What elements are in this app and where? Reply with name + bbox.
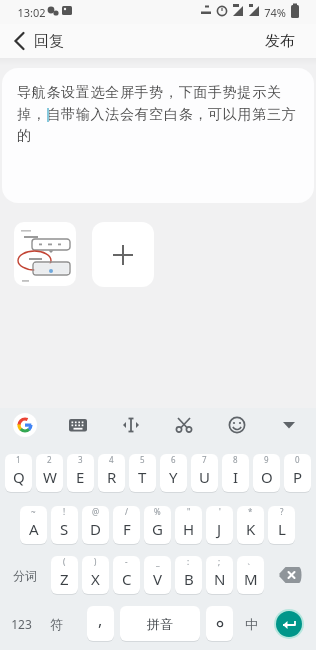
button[interactable]: 中 [237,606,265,642]
button[interactable]: 4 [98,454,125,492]
button[interactable]: 发布 [258,31,302,51]
staticText: Z [60,569,69,589]
button[interactable]: 1 [5,454,32,492]
button[interactable]: , [87,606,114,641]
staticText: I [233,467,239,487]
staticText: 8 [233,454,238,465]
button[interactable] [92,222,154,287]
staticText: " [187,506,191,517]
staticText: T [138,467,147,487]
button[interactable] [206,606,233,641]
staticText: ; [218,556,221,567]
staticText: , [98,609,103,631]
staticText: M [244,569,258,589]
button[interactable]: 2 [36,454,63,492]
staticText: G [152,519,163,539]
button[interactable]: _ [144,556,171,594]
staticText: 、 [247,556,255,566]
staticText: U [199,467,210,487]
staticText: ? [280,506,284,517]
staticText: L [278,519,286,539]
staticText: 123 [11,616,32,632]
staticText: Y [169,467,178,487]
staticText: ( [63,556,66,567]
button[interactable]: : [175,556,202,594]
button[interactable] [281,417,297,433]
button[interactable]: @ [82,506,109,544]
button[interactable]: ) [82,556,109,594]
staticText: A [29,519,39,539]
staticText: Q [13,467,25,487]
staticText: E [76,467,85,487]
staticText: % [154,506,161,517]
staticText: : [187,556,190,567]
button[interactable]: " [175,506,202,544]
staticText: 回复 [34,32,64,51]
staticText: X [91,569,100,589]
button[interactable]: / [113,506,140,544]
staticText: 0 [295,454,300,465]
button[interactable]: 123 [5,606,37,642]
button[interactable] [274,609,304,639]
button[interactable]: 8 [222,454,249,492]
button[interactable]: % [144,506,171,544]
staticText: C [122,569,132,589]
staticText: 拼音 [147,616,173,632]
button[interactable]: ? [268,506,295,544]
button[interactable]: 导航条设置选全屏手势，下面手势提示关掉，自带输入法会有空白条，可以用第三方的 [2,68,314,203]
button[interactable]: * [237,506,264,544]
staticText: H [183,519,195,539]
button[interactable]: 9 [253,454,280,492]
staticText: 导航条设置选全屏手势，下面手势提示关掉，自带输入法会有空白条，可以用第三方的 [17,84,301,144]
button[interactable] [121,415,141,435]
staticText: V [153,569,163,589]
staticText: O [261,467,273,487]
button[interactable]: ' [206,506,233,544]
button[interactable]: ! [51,506,78,544]
button[interactable]: ; [206,556,233,594]
button[interactable] [174,415,194,435]
button[interactable]: 符 [42,606,70,642]
button[interactable]: 5 [129,454,156,492]
staticText: ~ [31,506,36,517]
staticText: _ [156,556,160,567]
staticText: 分词 [13,568,37,583]
staticText: - [125,556,128,567]
button[interactable]: 拼音 [120,606,200,641]
button[interactable] [10,31,30,51]
staticText: 7 [202,454,207,465]
button[interactable] [14,222,76,286]
staticText: * [248,506,253,517]
staticText: B [184,569,194,589]
button[interactable]: ( [51,556,78,594]
button[interactable] [227,415,247,435]
staticText: 6 [171,454,176,465]
staticText: K [246,519,256,539]
staticText: 2 [47,454,52,465]
button[interactable] [277,565,305,585]
staticText: N [214,569,226,589]
staticText: / [125,506,128,517]
button[interactable]: 3 [67,454,94,492]
staticText: 符 [50,616,63,632]
staticText: F [123,519,131,539]
staticText: 发布 [265,32,295,51]
staticText: D [90,519,101,539]
button[interactable]: 6 [160,454,187,492]
staticText: J [217,519,222,539]
button[interactable]: 7 [191,454,218,492]
staticText: ) [94,556,97,567]
staticText: 5 [140,454,145,465]
button[interactable]: ~ [20,506,47,544]
button[interactable] [13,413,37,437]
staticText: S [60,519,69,539]
staticText: 1 [16,454,21,465]
button[interactable]: 、 [237,556,264,594]
button[interactable]: - [113,556,140,594]
staticText: P [293,467,303,487]
staticText: ! [63,506,66,517]
button[interactable]: 0 [284,454,311,492]
staticText: 中 [245,616,258,632]
button[interactable] [68,415,88,435]
button[interactable]: 分词 [5,556,45,594]
